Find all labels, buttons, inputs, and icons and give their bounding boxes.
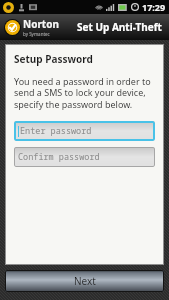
staticText: 17:29 <box>142 1 166 13</box>
button[interactable]: Next <box>5 270 164 292</box>
staticText: Setup Password <box>14 52 93 66</box>
staticText: Set Up Anti-Theft <box>77 20 162 34</box>
staticText: Enter password <box>20 125 92 137</box>
staticText: Norton <box>23 17 59 31</box>
button[interactable]: Confirm password <box>14 147 155 167</box>
staticText: Confirm password <box>18 151 100 163</box>
button[interactable]: Enter password <box>14 121 155 141</box>
staticText: You need a password in order to send a S… <box>14 75 155 111</box>
staticText: by Symantec <box>23 31 50 37</box>
other: Norton logo <box>4 19 21 36</box>
staticText: Next <box>74 274 96 288</box>
